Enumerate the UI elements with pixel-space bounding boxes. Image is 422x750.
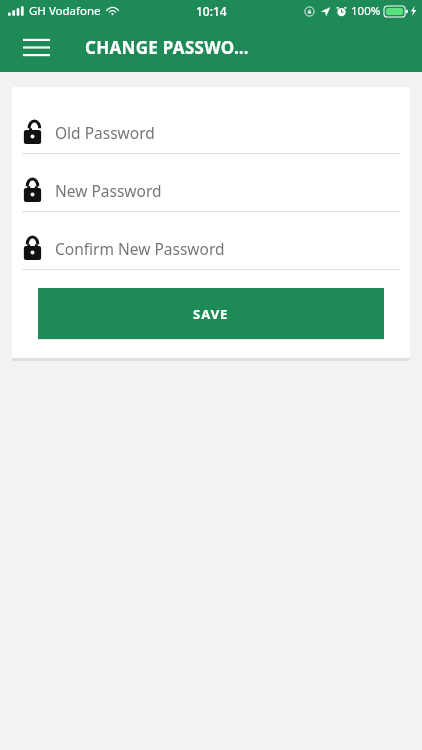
- staticText: Old Password: [55, 122, 155, 143]
- button[interactable]: SAVE: [38, 288, 384, 339]
- button[interactable]: Old Password: [12, 111, 410, 153]
- staticText: 100%: [351, 3, 381, 19]
- staticText: Confirm New Password: [55, 238, 225, 259]
- button[interactable]: New Password: [12, 169, 410, 211]
- button[interactable]: Confirm New Password: [12, 227, 410, 269]
- staticText: New Password: [55, 180, 162, 201]
- staticText: 10:14: [196, 3, 227, 19]
- staticText: GH Vodafone: [29, 3, 101, 19]
- staticText: SAVE: [193, 305, 229, 323]
- staticText: CHANGE PASSWO…: [85, 36, 249, 59]
- button[interactable]: Open navigation menu: [14, 25, 58, 69]
